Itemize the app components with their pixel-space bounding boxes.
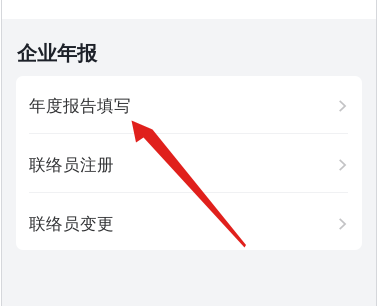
staticText: 联络员注册 xyxy=(29,155,114,175)
button[interactable]: 联络员注册 xyxy=(16,134,362,192)
button[interactable]: 联络员变更 xyxy=(16,193,362,251)
button[interactable]: 年度报告填写 xyxy=(16,75,362,133)
staticText: 年度报告填写 xyxy=(29,96,131,116)
staticText: 企业年报 xyxy=(17,41,97,66)
staticText: 联络员变更 xyxy=(29,214,114,234)
